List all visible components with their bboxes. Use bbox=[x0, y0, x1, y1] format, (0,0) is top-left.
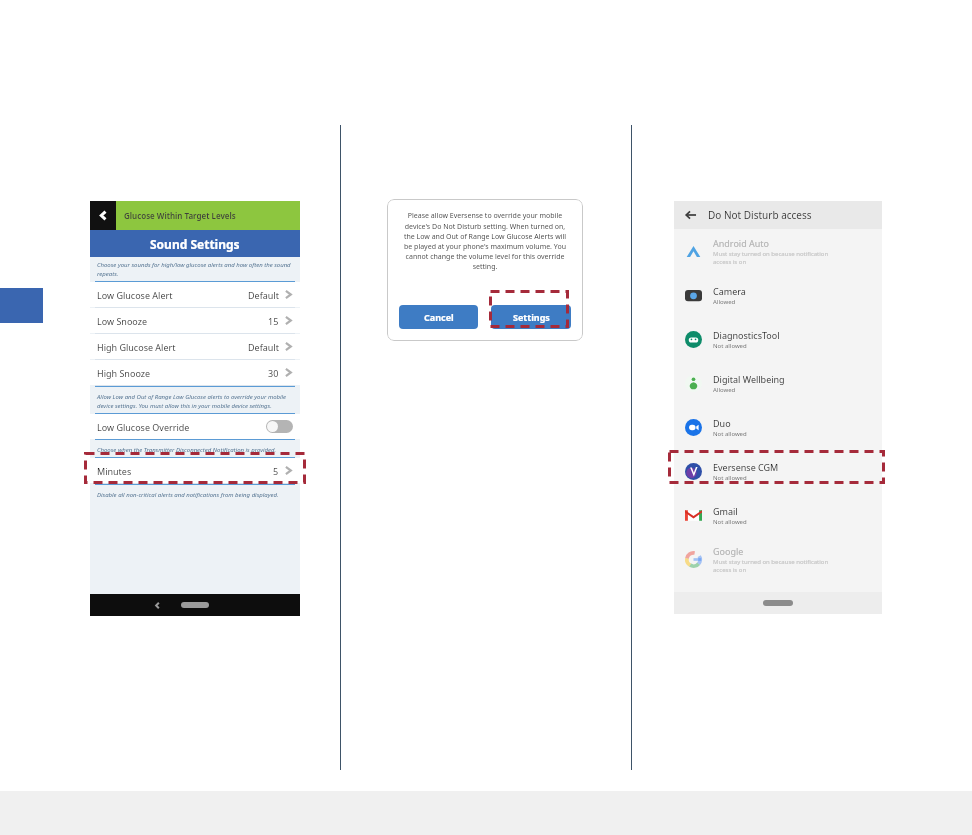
button[interactable]: Android Auto bbox=[674, 229, 882, 273]
staticText: Allow Low and Out of Range Low Glucose a… bbox=[97, 393, 293, 410]
staticText: Do Not Disturb access bbox=[708, 208, 812, 222]
staticText: Low Glucose Override bbox=[97, 421, 190, 433]
staticText: Disable all non-critical alerts and noti… bbox=[97, 491, 293, 499]
staticText: Android Auto bbox=[713, 237, 770, 249]
staticText: 5 bbox=[273, 465, 279, 477]
staticText: Gmail bbox=[713, 505, 738, 517]
staticText: DiagnosticsTool bbox=[713, 329, 780, 341]
button[interactable]: Back bbox=[683, 207, 699, 223]
button[interactable]: Back bbox=[90, 201, 116, 230]
staticText: Low Snooze bbox=[97, 315, 148, 327]
button[interactable]: Eversense CGM bbox=[674, 449, 882, 493]
button[interactable]: Google bbox=[674, 537, 882, 581]
staticText: Eversense CGM bbox=[713, 461, 779, 473]
staticText: Please allow Eversense to override your … bbox=[399, 211, 571, 271]
button[interactable]: Minutes bbox=[90, 458, 300, 483]
staticText: Must stay turned on because notification… bbox=[713, 250, 839, 266]
button[interactable]: Camera bbox=[674, 273, 882, 317]
staticText: Default bbox=[248, 341, 279, 353]
button[interactable]: High Glucose Alert bbox=[90, 334, 300, 359]
staticText: Not allowed bbox=[713, 518, 839, 526]
staticText: Settings bbox=[513, 311, 550, 323]
staticText: Not allowed bbox=[713, 474, 839, 482]
staticText: Must stay turned on because notification… bbox=[713, 558, 839, 574]
staticText: Allowed bbox=[713, 386, 839, 394]
staticText: Camera bbox=[713, 285, 746, 297]
staticText: Choose when the Transmitter Disconnected… bbox=[97, 446, 293, 454]
staticText: Glucose Within Target Levels bbox=[124, 210, 236, 221]
button[interactable]: Low Glucose Override bbox=[90, 414, 300, 439]
button[interactable]: Low Glucose Alert bbox=[90, 282, 300, 307]
button[interactable]: Duo bbox=[674, 405, 882, 449]
staticText: Google bbox=[713, 545, 744, 557]
staticText: Not allowed bbox=[713, 430, 839, 438]
button[interactable]: Gmail bbox=[674, 493, 882, 537]
staticText: High Glucose Alert bbox=[97, 341, 176, 353]
staticText: Choose your sounds for high/low glucose … bbox=[97, 261, 293, 278]
staticText: Low Glucose Alert bbox=[97, 289, 173, 301]
staticText: Default bbox=[248, 289, 279, 301]
button[interactable]: DiagnosticsTool bbox=[674, 317, 882, 361]
staticText: Sound Settings bbox=[150, 236, 240, 252]
staticText: Cancel bbox=[424, 311, 454, 323]
staticText: High Snooze bbox=[97, 367, 151, 379]
staticText: 15 bbox=[268, 315, 279, 327]
button[interactable]: Digital Wellbeing bbox=[674, 361, 882, 405]
staticText: Minutes bbox=[97, 465, 132, 477]
staticText: Duo bbox=[713, 417, 731, 429]
button[interactable]: High Snooze bbox=[90, 360, 300, 385]
staticText: 30 bbox=[268, 367, 279, 379]
staticText: Digital Wellbeing bbox=[713, 373, 785, 385]
staticText: Not allowed bbox=[713, 342, 839, 350]
button[interactable]: Low Snooze bbox=[90, 308, 300, 333]
button[interactable]: Settings bbox=[491, 305, 571, 329]
button[interactable]: Cancel bbox=[399, 305, 478, 329]
staticText: Allowed bbox=[713, 298, 839, 306]
